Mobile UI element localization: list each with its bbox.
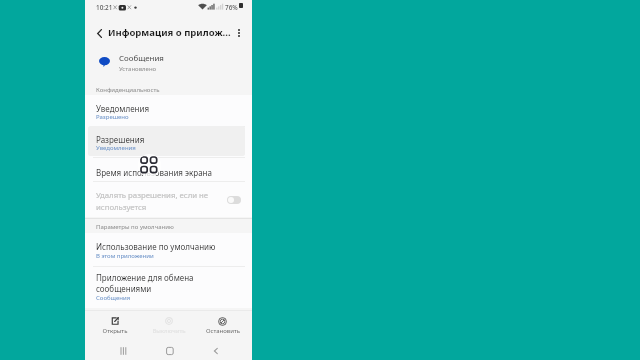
staticText: Открыть bbox=[95, 327, 135, 335]
staticText: Время использования экрана bbox=[96, 167, 212, 178]
staticText: Уведомления bbox=[96, 103, 150, 114]
button[interactable] bbox=[88, 126, 245, 156]
button[interactable] bbox=[85, 235, 252, 265]
staticText: Конфиденциальность bbox=[96, 86, 160, 94]
staticText: Сообщения bbox=[96, 294, 131, 302]
staticText: Информация о прилож... bbox=[108, 26, 231, 39]
button[interactable] bbox=[85, 267, 252, 309]
staticText: Использование по умолчанию bbox=[96, 241, 216, 252]
button[interactable]: Переключатель bbox=[227, 196, 241, 204]
staticText: Остановить bbox=[203, 327, 243, 335]
staticText: В этом приложении bbox=[96, 252, 154, 260]
staticText: Разрешения bbox=[96, 134, 145, 145]
button[interactable]: Последние приложения bbox=[112, 339, 135, 360]
staticText: Удалять разрешения, если не используется bbox=[96, 190, 224, 212]
staticText: Разрешено bbox=[96, 113, 129, 121]
button[interactable]: Главный экран bbox=[158, 339, 181, 360]
staticText: Установлено bbox=[119, 65, 157, 73]
staticText: Сообщения bbox=[119, 53, 164, 64]
button[interactable] bbox=[93, 312, 137, 338]
staticText: Параметры по умолчанию bbox=[96, 223, 174, 231]
staticText: Уведомления bbox=[96, 144, 136, 152]
button[interactable]: Назад bbox=[204, 339, 227, 360]
button[interactable]: Назад bbox=[91, 25, 108, 42]
button[interactable] bbox=[147, 312, 191, 338]
staticText: 76% bbox=[225, 3, 238, 12]
button[interactable] bbox=[85, 158, 252, 181]
staticText: Приложение для обмена сообщениями bbox=[96, 272, 226, 295]
staticText: 10:21 bbox=[96, 3, 113, 12]
button[interactable]: Дополнительно bbox=[230, 24, 247, 41]
button[interactable] bbox=[85, 97, 252, 126]
button[interactable] bbox=[85, 46, 252, 74]
button[interactable] bbox=[85, 182, 252, 213]
staticText: Выключить bbox=[149, 327, 189, 335]
button[interactable] bbox=[200, 312, 246, 338]
